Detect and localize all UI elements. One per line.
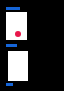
button[interactable] [6,12,27,40]
